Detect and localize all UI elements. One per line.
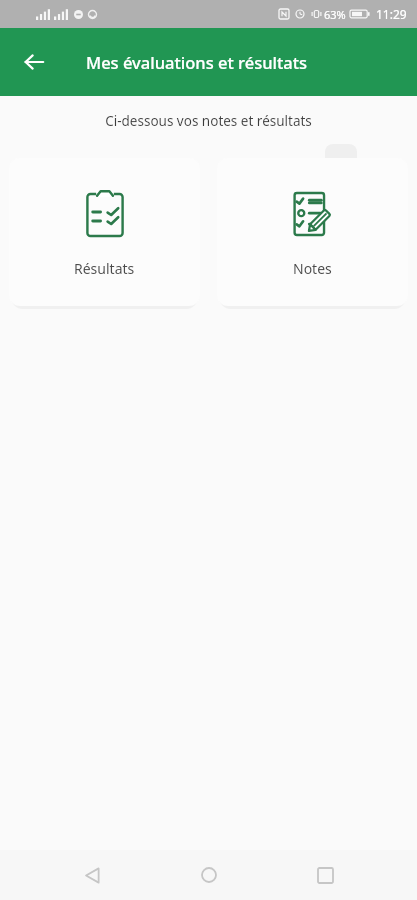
staticText: Notes [293, 259, 332, 278]
staticText: Mes évaluations et résultats [86, 51, 308, 73]
button[interactable]: Résultats [9, 158, 200, 306]
staticText: Ci-dessous vos notes et résultats [0, 112, 417, 130]
staticText: 11:29 [376, 6, 407, 22]
button[interactable]: Home [187, 853, 231, 897]
button[interactable]: Notes [217, 158, 408, 306]
button[interactable]: Back [70, 853, 114, 897]
button[interactable]: Back [12, 40, 56, 84]
staticText: 63% [324, 7, 346, 22]
button[interactable]: Recent apps [303, 853, 347, 897]
staticText: Résultats [74, 259, 135, 278]
